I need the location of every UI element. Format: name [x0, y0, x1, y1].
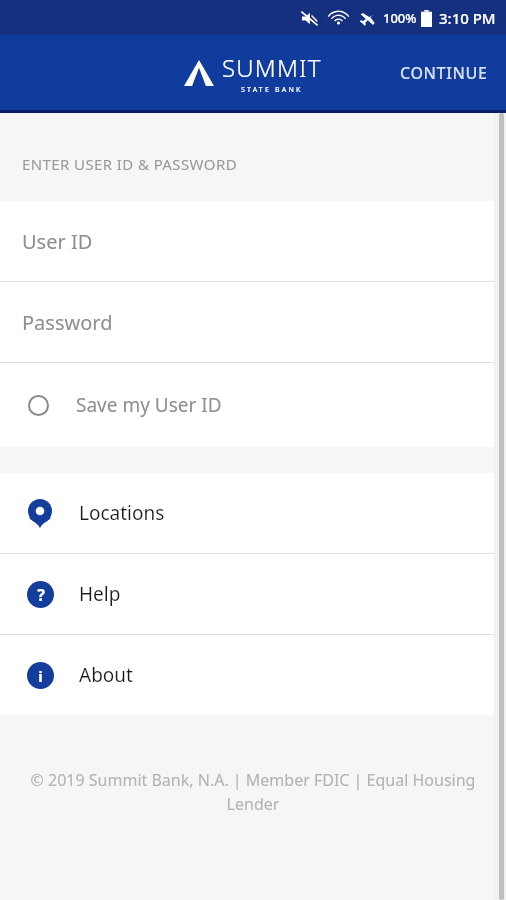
button[interactable]: Password	[0, 282, 506, 362]
staticText: © 2019 Summit Bank, N.A. | Member FDIC |…	[18, 769, 488, 815]
staticText: CONTINUE	[400, 62, 488, 84]
staticText: Locations	[79, 500, 165, 526]
staticText: SUMMIT	[222, 51, 322, 84]
button[interactable]: Locations	[0, 473, 506, 553]
button[interactable]: User ID	[0, 201, 506, 281]
staticText: User ID	[22, 228, 93, 255]
staticText: Help	[79, 581, 121, 607]
button[interactable]: CONTINUE	[382, 46, 506, 100]
staticText: 3:10 PM	[439, 8, 496, 28]
button[interactable]: i	[0, 635, 506, 715]
staticText: About	[79, 662, 133, 688]
button[interactable]: ?	[0, 554, 506, 634]
staticText: Password	[22, 309, 113, 336]
staticText: i	[38, 666, 43, 686]
button[interactable]: Save my User ID	[0, 363, 506, 447]
staticText: 100%	[383, 9, 417, 27]
staticText: ?	[37, 584, 45, 606]
staticText: ENTER USER ID & PASSWORD	[22, 154, 238, 174]
staticText: STATE BANK	[241, 85, 303, 95]
staticText: Save my User ID	[76, 392, 222, 418]
